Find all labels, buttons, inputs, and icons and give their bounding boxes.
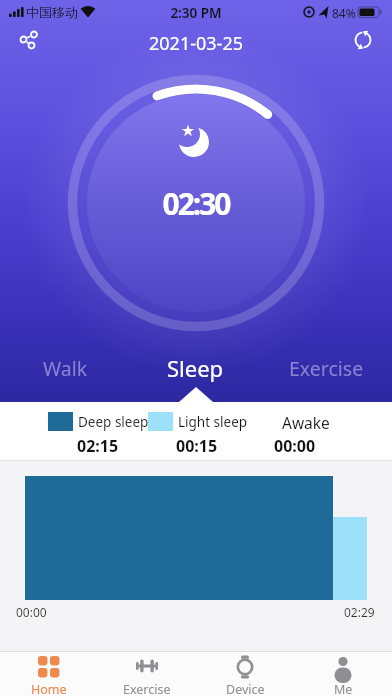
button[interactable]: Sleep (130, 351, 261, 385)
staticText: Device (226, 681, 265, 696)
staticText: Exercise (123, 681, 171, 696)
button[interactable]: Device (196, 652, 294, 696)
button[interactable]: Home (0, 652, 98, 696)
staticText: 00:00 (16, 604, 47, 620)
staticText: 02:30 (0, 183, 392, 224)
staticText: Sleep (167, 353, 224, 383)
staticText: Deep sleep (78, 413, 149, 431)
staticText: Exercise (289, 355, 364, 382)
staticText: Walk (43, 355, 88, 382)
button[interactable] (348, 28, 380, 60)
staticText: 2021-03-25 (0, 31, 392, 56)
button[interactable]: Exercise (98, 652, 196, 696)
staticText: Me (334, 681, 353, 696)
staticText: 02:29 (344, 604, 375, 620)
staticText: 84% (332, 5, 356, 21)
button[interactable] (14, 28, 46, 60)
button[interactable]: Me (294, 652, 392, 696)
staticText: 00:00 (274, 435, 316, 457)
staticText: 02:15 (77, 435, 119, 457)
staticText: Awake (282, 412, 330, 433)
staticText: 中国移动 (26, 4, 78, 20)
staticText: 00:15 (176, 435, 218, 457)
staticText: Light sleep (178, 413, 248, 431)
staticText: Home (31, 681, 67, 696)
button[interactable]: Walk (0, 351, 130, 385)
staticText: 2:30 PM (0, 4, 392, 22)
button[interactable]: Exercise (261, 351, 392, 385)
